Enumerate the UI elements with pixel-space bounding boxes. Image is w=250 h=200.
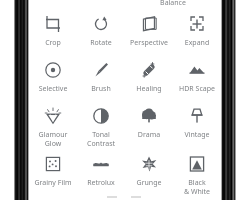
button[interactable]: Perspective [125,12,173,56]
staticText: Selective [29,84,77,94]
button[interactable]: Crop [29,12,77,56]
staticText: Balance [149,0,197,8]
staticText: Brush [77,84,125,94]
staticText: Black & White [173,178,221,196]
staticText: HDR Scape [173,84,221,94]
staticText: Retrolux [77,178,125,188]
button[interactable]: HDR Scape [173,58,221,102]
button[interactable]: Selective [29,58,77,102]
button[interactable]: Healing [125,58,173,102]
button[interactable]: Glamour Glow [29,104,77,148]
staticText: Healing [125,84,173,94]
button[interactable]: Grunge [125,152,173,196]
button[interactable]: Black & White [173,152,221,196]
button[interactable]: More tools [101,194,149,200]
staticText: Tonal Contrast [77,130,125,148]
staticText: Expand [173,38,221,48]
button[interactable]: Balance [149,0,197,10]
staticText: Perspective [125,38,173,48]
staticText: Crop [29,38,77,48]
staticText: Grainy Film [29,178,77,188]
button[interactable]: Grainy Film [29,152,77,196]
staticText: Glamour Glow [29,130,77,148]
button[interactable]: Drama [125,104,173,148]
button[interactable]: Retrolux [77,152,125,196]
staticText: Rotate [77,38,125,48]
button[interactable]: Expand [173,12,221,56]
button[interactable]: Rotate [77,12,125,56]
staticText: Drama [125,130,173,140]
button[interactable]: Brush [77,58,125,102]
button[interactable]: Vintage [173,104,221,148]
staticText: Vintage [173,130,221,140]
staticText: Grunge [125,178,173,188]
button[interactable]: Tonal Contrast [77,104,125,148]
